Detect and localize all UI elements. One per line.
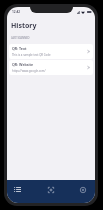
button[interactable]: QR: Website xyxy=(9,60,93,75)
staticText: 12:42 xyxy=(12,10,21,14)
staticText: https://www.google.com/ xyxy=(12,69,46,73)
staticText: QR: Text xyxy=(12,46,27,51)
button[interactable]: Scan QR code xyxy=(43,181,58,198)
button[interactable]: Scan history list xyxy=(10,181,25,198)
staticText: This is a sample text QR Code xyxy=(12,53,51,57)
button[interactable]: QR: Text xyxy=(9,44,93,59)
button[interactable]: Create new code xyxy=(75,181,90,198)
staticText: QR: Website xyxy=(12,62,34,67)
staticText: History xyxy=(11,21,37,31)
staticText: LAST SCANNED xyxy=(11,36,30,40)
